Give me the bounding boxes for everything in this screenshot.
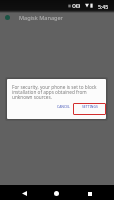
staticText: SETTINGS <box>82 104 98 109</box>
button[interactable]: CANCEL <box>54 102 72 111</box>
staticText: For security, your phone is set to block… <box>12 84 97 100</box>
button[interactable]: SETTINGS <box>78 102 101 111</box>
staticText: Magisk Manager <box>19 14 63 22</box>
button[interactable]: Recent apps <box>80 185 100 200</box>
staticText: 5:45 <box>98 3 109 10</box>
button[interactable]: Open navigation menu <box>2 12 12 22</box>
button[interactable]: Home <box>46 185 66 200</box>
button[interactable]: Back <box>14 185 34 200</box>
staticText: CANCEL <box>57 104 70 109</box>
